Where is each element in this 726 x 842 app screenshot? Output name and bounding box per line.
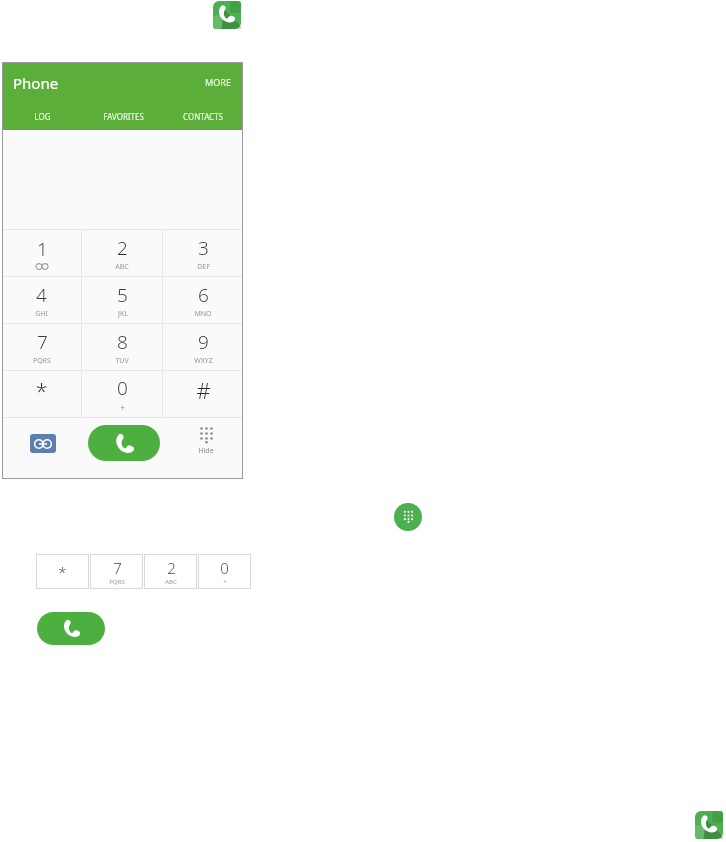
button[interactable]: 8 xyxy=(82,324,162,370)
staticText: WXYZ xyxy=(194,356,213,366)
staticText: Hide xyxy=(198,446,214,456)
button[interactable]: * xyxy=(36,554,89,589)
button[interactable]: 9 xyxy=(163,324,243,370)
button[interactable]: 2 xyxy=(144,554,197,589)
staticText: TUV xyxy=(115,356,129,366)
button[interactable]: Call xyxy=(88,425,160,461)
staticText: 0 xyxy=(220,558,229,578)
button[interactable]: 3 xyxy=(163,230,243,276)
staticText: * xyxy=(58,562,67,582)
button[interactable]: 0 xyxy=(198,554,251,589)
other: Phone app icon xyxy=(695,811,723,839)
staticText: * xyxy=(35,375,48,405)
staticText: PQRS xyxy=(33,356,51,366)
button[interactable]: 4 xyxy=(2,277,81,323)
staticText: # xyxy=(196,375,211,405)
staticText: 1 xyxy=(37,236,48,262)
staticText: 0 xyxy=(117,375,128,401)
button[interactable]: # xyxy=(163,371,243,417)
button[interactable]: 1 xyxy=(2,230,81,276)
staticText: MNO xyxy=(194,309,212,319)
staticText: + xyxy=(223,578,227,586)
button[interactable]: MORE xyxy=(205,76,231,88)
button[interactable]: 0 xyxy=(82,371,162,417)
staticText: DEF xyxy=(197,262,210,272)
button[interactable]: Call xyxy=(37,612,105,645)
staticText: JKL xyxy=(118,309,128,319)
other: Phone app icon xyxy=(213,1,241,29)
button[interactable]: 5 xyxy=(82,277,162,323)
staticText: FAVORITES xyxy=(103,111,144,122)
staticText: ABC xyxy=(165,578,177,586)
staticText: 5 xyxy=(117,282,128,308)
button[interactable]: 6 xyxy=(163,277,243,323)
staticText: GHI xyxy=(35,309,48,319)
button[interactable]: 2 xyxy=(82,230,162,276)
button[interactable]: LOG xyxy=(2,105,83,127)
staticText: PQRS xyxy=(109,578,125,586)
button[interactable]: 7 xyxy=(90,554,143,589)
staticText: 3 xyxy=(198,235,209,261)
staticText: 6 xyxy=(198,282,209,308)
staticText: 2 xyxy=(167,558,176,578)
staticText: 7 xyxy=(113,558,122,578)
staticText: CONTACTS xyxy=(183,111,223,122)
staticText: Phone xyxy=(13,73,59,93)
staticText: 2 xyxy=(117,235,128,261)
staticText: ABC xyxy=(115,262,129,272)
staticText: MORE xyxy=(205,76,231,88)
button[interactable]: FAVORITES xyxy=(83,105,163,127)
button[interactable]: Show dialpad xyxy=(394,503,422,531)
button[interactable]: CONTACTS xyxy=(163,105,243,127)
button[interactable]: Hide xyxy=(188,426,224,456)
staticText: + xyxy=(120,402,125,413)
staticText: LOG xyxy=(34,111,51,122)
staticText: 4 xyxy=(36,282,47,308)
staticText: 7 xyxy=(37,329,48,355)
button[interactable]: * xyxy=(2,371,81,417)
button[interactable]: Voicemail xyxy=(30,434,56,453)
button[interactable]: 7 xyxy=(2,324,81,370)
staticText: 8 xyxy=(117,329,128,355)
staticText: 9 xyxy=(198,329,209,355)
